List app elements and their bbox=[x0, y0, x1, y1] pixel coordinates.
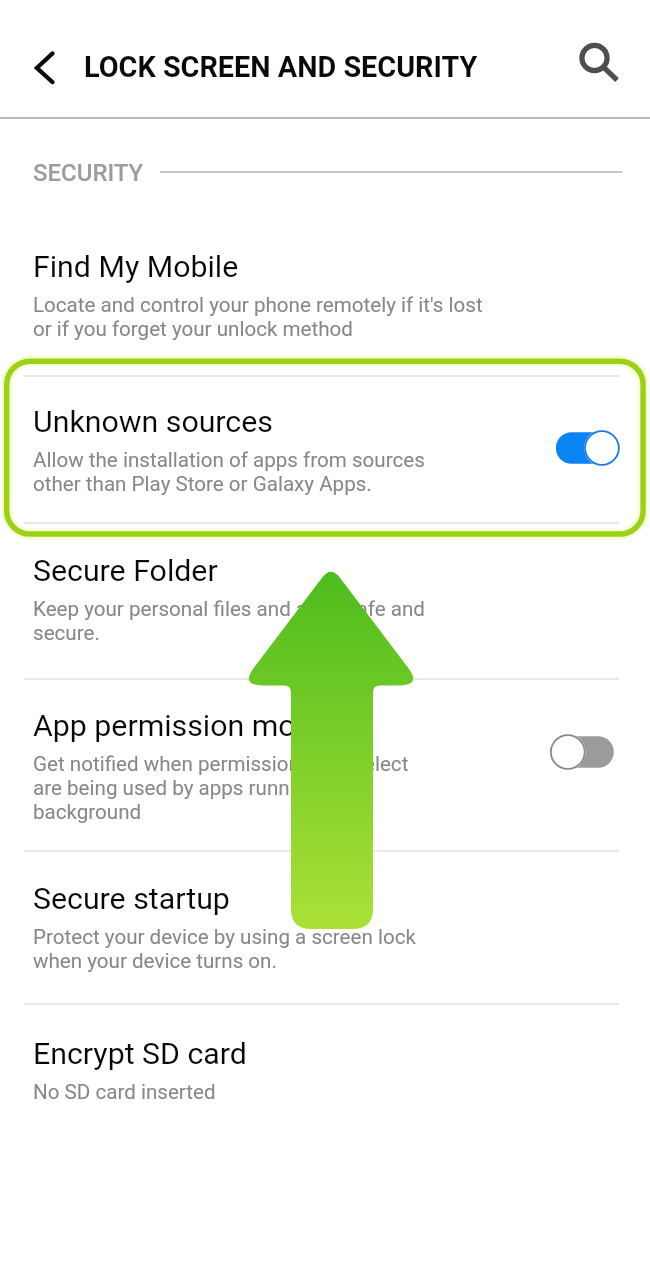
staticText: Secure startup bbox=[33, 881, 230, 917]
button[interactable]: Search bbox=[552, 0, 650, 117]
button[interactable]: Find My Mobile bbox=[0, 190, 650, 375]
staticText: Unknown sources bbox=[33, 404, 273, 440]
staticText: Allow the installation of apps from sour… bbox=[33, 448, 425, 496]
staticText: Locate and control your phone remotely i… bbox=[33, 293, 483, 341]
staticText: Encrypt SD card bbox=[33, 1036, 247, 1072]
staticText: Protect your device by using a screen lo… bbox=[33, 925, 416, 973]
button[interactable]: Switch on bbox=[550, 406, 650, 490]
staticText: Secure Folder bbox=[33, 553, 218, 589]
button[interactable]: Secure Folder bbox=[0, 523, 650, 678]
staticText: No SD card inserted bbox=[33, 1080, 216, 1104]
staticText: App permission monitor bbox=[33, 708, 357, 744]
staticText: Find My Mobile bbox=[33, 249, 239, 285]
staticText: Get notified when permissions you select… bbox=[33, 752, 409, 824]
staticText: SECURITY bbox=[33, 159, 144, 187]
button[interactable]: Navigate up bbox=[0, 0, 84, 117]
button[interactable]: Unknown sources bbox=[0, 376, 650, 522]
button[interactable]: Encrypt SD card bbox=[0, 1004, 650, 1130]
button[interactable]: Switch off bbox=[550, 710, 650, 794]
button[interactable]: App permission monitor bbox=[0, 679, 650, 850]
button[interactable]: Secure startup bbox=[0, 851, 650, 1003]
staticText: LOCK SCREEN AND SECURITY bbox=[84, 50, 478, 84]
staticText: Keep your personal files and apps safe a… bbox=[33, 597, 425, 645]
